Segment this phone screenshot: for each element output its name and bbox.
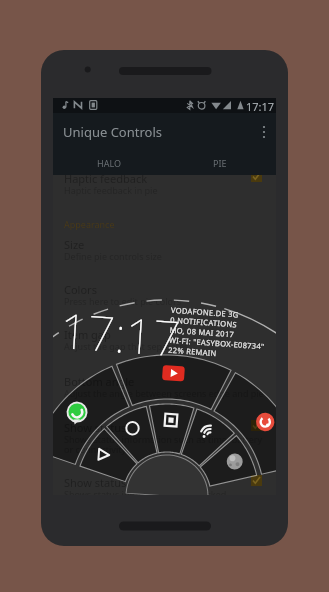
button[interactable]: Show status while locked — [53, 469, 276, 495]
staticText: 22% REMAIN — [168, 345, 217, 358]
button[interactable]: HALO — [53, 151, 164, 175]
staticText: HALO — [97, 157, 121, 169]
staticText: Shows status information such as time, b… — [64, 433, 263, 455]
staticText: 0 NOTIFICATIONS — [170, 315, 237, 329]
staticText: Appearance — [64, 218, 115, 230]
staticText: Bottom angle — [64, 374, 135, 389]
staticText: Item gap — [64, 327, 111, 342]
button[interactable]: Bottom angle — [53, 368, 276, 412]
staticText: Adjust the angle between screens edge an… — [64, 387, 264, 399]
staticText: Size — [64, 237, 85, 252]
staticText: Haptic feedback — [64, 171, 148, 186]
button[interactable]: Item gap — [53, 321, 276, 365]
staticText: 17:17 — [246, 99, 275, 114]
button[interactable]: Haptic feedback — [53, 165, 276, 209]
staticText: Colors — [64, 282, 97, 297]
staticText: Unique Controls — [63, 123, 162, 141]
button[interactable]: PIE — [164, 151, 276, 175]
staticText: Show status while locked — [64, 475, 193, 490]
staticText: MO, 08 MAI 2017 — [169, 325, 235, 339]
staticText: Press here to edit pie colors — [64, 295, 182, 307]
button[interactable]: Colors — [53, 276, 276, 320]
staticText: VODAFONE.DE 3G — [171, 305, 239, 319]
staticText: 17:17 — [58, 297, 183, 370]
staticText: PIE — [213, 157, 227, 169]
button[interactable]: Show status — [53, 414, 276, 458]
staticText: WI-FI: "EASYBOX-E08734" — [169, 335, 265, 351]
staticText: Shows status information while locked — [64, 488, 227, 495]
staticText: Show status — [64, 420, 127, 435]
button[interactable]: More options — [252, 120, 276, 144]
staticText: Adjust the gap that separates — [64, 340, 189, 352]
